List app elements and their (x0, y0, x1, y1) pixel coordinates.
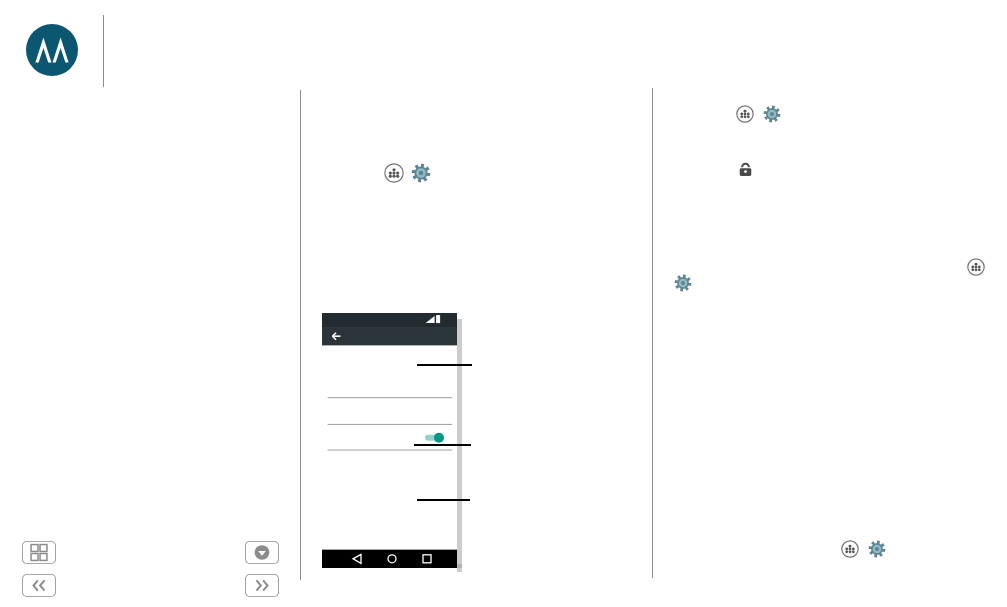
button[interactable]: Apps (841, 540, 859, 558)
button[interactable]: Settings (411, 163, 431, 183)
button[interactable]: Settings (868, 540, 886, 558)
button[interactable]: Apps (384, 163, 404, 183)
button[interactable]: Settings (674, 274, 692, 292)
button[interactable]: Previous (22, 574, 56, 597)
other: Motorola logo (26, 24, 78, 76)
button[interactable]: Next (245, 574, 279, 597)
button[interactable]: Screen lock (737, 161, 754, 178)
button[interactable]: Apps (736, 105, 754, 123)
button[interactable]: Download (245, 541, 279, 564)
button[interactable]: Home grid (22, 541, 56, 564)
button[interactable]: Settings (763, 105, 781, 123)
button[interactable]: Apps (967, 258, 985, 276)
